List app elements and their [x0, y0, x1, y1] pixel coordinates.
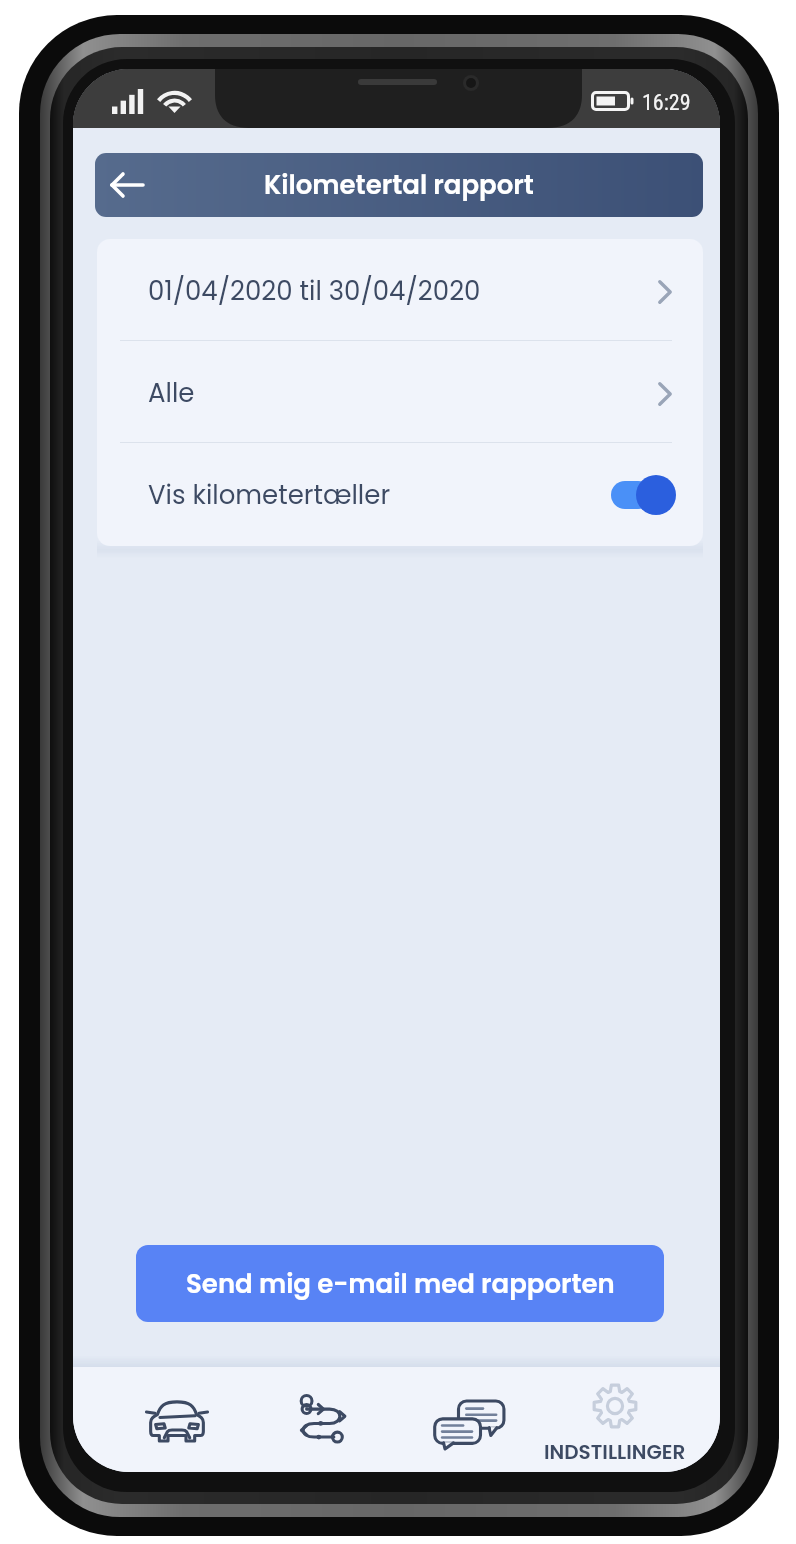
staticText: Send mig e-mail med rapporten [186, 1266, 615, 1302]
staticText: Alle [148, 375, 195, 411]
button[interactable]: Back [95, 153, 159, 217]
button[interactable]: Kilometertal rapport [95, 153, 703, 217]
button[interactable]: INDSTILLINGER [525, 1367, 705, 1472]
button[interactable]: Trips [251, 1367, 395, 1472]
staticText: INDSTILLINGER [544, 1438, 686, 1466]
button[interactable]: Alle [97, 341, 703, 442]
button[interactable]: Cars [105, 1367, 249, 1472]
staticText: Vis kilometertæller [148, 477, 391, 513]
staticText: Kilometertal rapport [264, 167, 534, 203]
button[interactable]: Vis kilometertæller [97, 443, 703, 546]
button[interactable]: Send mig e-mail med rapporten [136, 1245, 664, 1322]
button[interactable]: Messages [397, 1367, 541, 1472]
staticText: 01/04/2020 til 30/04/2020 [148, 273, 481, 309]
staticText: 16:29 [642, 90, 691, 116]
button[interactable]: 01/04/2020 til 30/04/2020 [97, 239, 703, 340]
